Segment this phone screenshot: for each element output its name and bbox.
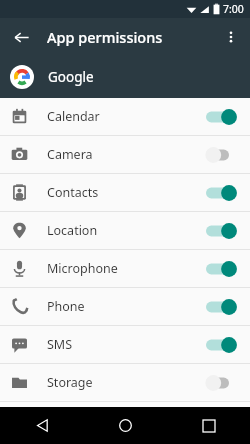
staticText: Storage: [47, 374, 93, 391]
button[interactable]: Enabled: [206, 108, 238, 126]
staticText: Google: [48, 68, 94, 86]
staticText: Calendar: [47, 108, 100, 125]
button[interactable]: Microphone: [0, 250, 250, 287]
button[interactable]: Location: [0, 212, 250, 249]
button[interactable]: Contacts: [0, 174, 250, 211]
button[interactable]: Disabled: [206, 146, 238, 164]
staticText: Phone: [47, 298, 85, 315]
button[interactable]: Enabled: [206, 184, 238, 202]
button[interactable]: Recent apps: [167, 407, 250, 444]
button[interactable]: Enabled: [206, 260, 238, 278]
staticText: App permissions: [47, 27, 163, 47]
button[interactable]: SMS: [0, 326, 250, 363]
staticText: Camera: [47, 146, 93, 163]
button[interactable]: Home: [84, 407, 167, 444]
button[interactable]: Calendar: [0, 98, 250, 135]
button[interactable]: Back: [0, 407, 84, 444]
button[interactable]: Enabled: [206, 222, 238, 240]
button[interactable]: Phone: [0, 288, 250, 325]
button[interactable]: Enabled: [206, 336, 238, 354]
button[interactable]: Disabled: [206, 374, 238, 392]
staticText: Location: [47, 222, 98, 239]
button[interactable]: Enabled: [206, 298, 238, 316]
button[interactable]: Camera: [0, 136, 250, 173]
staticText: 7:00: [223, 2, 244, 16]
button[interactable]: More options: [216, 22, 246, 52]
button[interactable]: Google: [0, 56, 250, 98]
staticText: SMS: [47, 336, 73, 353]
button[interactable]: Storage: [0, 364, 250, 401]
button[interactable]: Back: [6, 22, 36, 52]
staticText: Contacts: [47, 184, 99, 201]
staticText: Microphone: [47, 260, 118, 277]
